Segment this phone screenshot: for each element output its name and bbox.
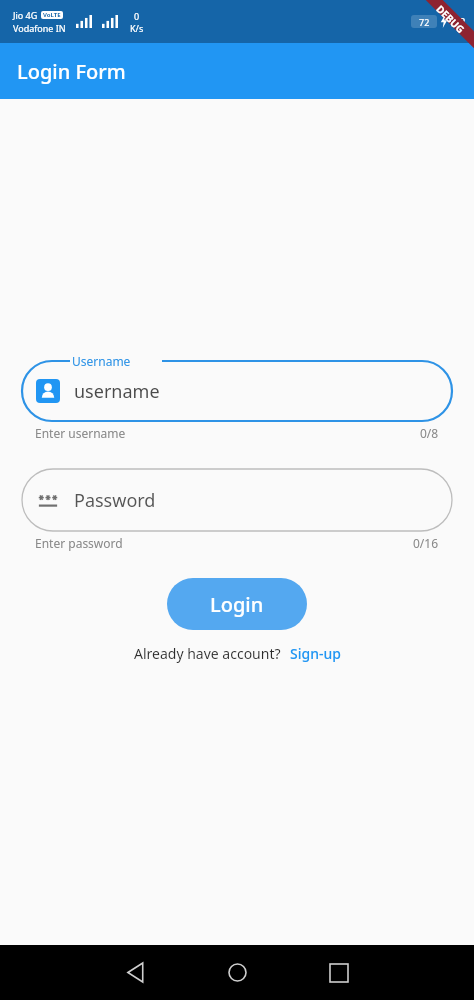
staticText: 72 xyxy=(419,16,430,28)
staticText: 0 xyxy=(134,10,140,22)
staticText: username xyxy=(74,379,160,404)
button[interactable]: Sign-up xyxy=(290,644,341,663)
staticText: Already have account? xyxy=(134,644,281,663)
staticText: Username xyxy=(72,353,131,369)
staticText: Vodafone IN xyxy=(13,22,66,34)
staticText: Enter password xyxy=(35,535,123,551)
staticText: DEBUG xyxy=(433,2,468,36)
button[interactable]: Back xyxy=(100,945,170,1000)
staticText: 0/16 xyxy=(413,535,439,551)
staticText: 0/8 xyxy=(420,425,439,441)
staticText: Login xyxy=(210,591,264,618)
staticText: Password xyxy=(74,488,156,513)
button[interactable]: Home xyxy=(202,945,272,1000)
button[interactable]: Recents xyxy=(304,945,374,1000)
staticText: Enter username xyxy=(35,425,126,441)
staticText: K/s xyxy=(130,22,144,34)
staticText: 7:2 xyxy=(450,14,466,29)
staticText: Login Form xyxy=(17,58,126,85)
staticText: VoLTE xyxy=(43,11,61,19)
button[interactable]: Username xyxy=(22,351,452,421)
staticText: Jio 4G xyxy=(13,9,38,21)
staticText: Sign-up xyxy=(290,644,341,663)
button[interactable]: Password xyxy=(22,469,452,531)
button[interactable]: Login xyxy=(167,578,307,630)
